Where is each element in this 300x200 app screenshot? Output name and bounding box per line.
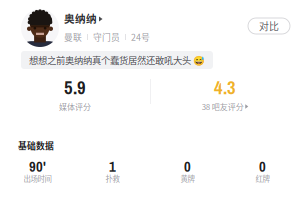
staticText: 90': [29, 157, 46, 176]
staticText: 红牌: [255, 173, 269, 184]
staticText: 38 吧友评分: [202, 101, 244, 112]
staticText: 媒体评分: [59, 101, 91, 112]
button[interactable]: 4.3: [150, 81, 300, 110]
button[interactable]: 对比: [248, 18, 290, 34]
staticText: 扑救: [105, 173, 119, 184]
staticText: 0: [184, 157, 191, 176]
staticText: 黄牌: [180, 173, 194, 184]
staticText: 基础数据: [18, 139, 54, 152]
staticText: 曼联: [64, 31, 82, 43]
staticText: 想想之前奥纳纳真个蠢货居然还敢吼大头 😅: [29, 53, 205, 67]
staticText: 5.9: [64, 75, 86, 100]
staticText: 0: [259, 157, 266, 176]
staticText: 4.3: [214, 75, 236, 100]
staticText: 守门员: [93, 31, 120, 43]
staticText: 1: [109, 157, 116, 176]
staticText: 对比: [259, 19, 279, 33]
staticText: 24号: [131, 31, 150, 43]
staticText: 出场时间: [23, 173, 51, 184]
staticText: 奥纳纳: [64, 10, 97, 26]
